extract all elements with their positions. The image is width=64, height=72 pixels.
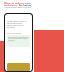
staticText: Ways to reduce [4, 2, 24, 4]
staticText: Ut enim ad minim veniam quis nostrud exe… [8, 36, 29, 42]
button[interactable]: Lorem ipsum dolor sit amet consectetur a… [5, 14, 32, 71]
staticText: Sed ut perspiciatis [7, 32, 22, 34]
staticText: for better sleep [18, 4, 34, 6]
staticText: your stress [24, 2, 34, 4]
staticText: and worry [4, 4, 18, 6]
staticText: Lorem ipsum dolor sit amet consectetur a… [4, 6, 34, 9]
button[interactable] [7, 63, 30, 71]
staticText: Lorem ipsum dolor sit amet consectetur a… [7, 20, 30, 28]
